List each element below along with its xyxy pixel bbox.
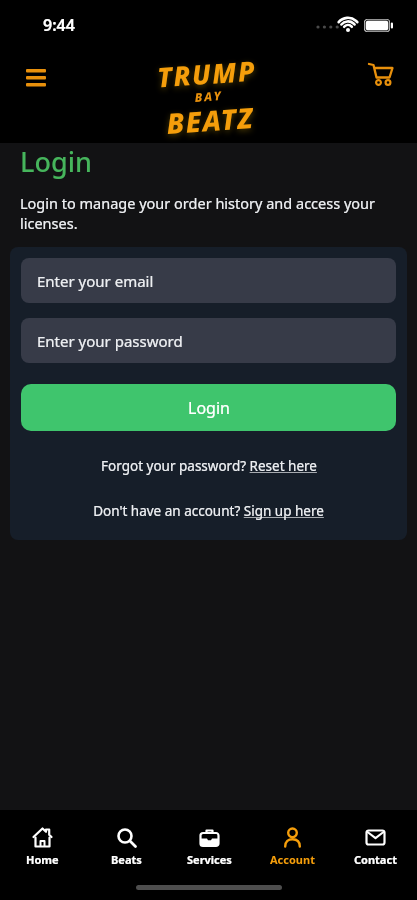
staticText: Home bbox=[26, 852, 59, 867]
button[interactable]: Enter your password bbox=[21, 318, 396, 363]
staticText: Login bbox=[20, 143, 92, 180]
staticText: TRUMP bbox=[156, 52, 257, 95]
staticText: Beats bbox=[111, 852, 142, 867]
button[interactable]: Contact bbox=[334, 826, 417, 867]
staticText: Don't have an account? Sign up here bbox=[93, 502, 324, 520]
button[interactable]: Forgot your password? Reset here bbox=[21, 457, 396, 475]
staticText: Services bbox=[187, 852, 232, 867]
button[interactable]: Services bbox=[168, 826, 251, 867]
button[interactable]: Login bbox=[21, 384, 396, 431]
staticText: Login to manage your order history and a… bbox=[20, 193, 376, 233]
button[interactable]: Beats bbox=[84, 826, 168, 867]
button[interactable]: Home bbox=[0, 826, 84, 867]
staticText: Login bbox=[188, 397, 230, 419]
staticText: Contact bbox=[354, 852, 397, 867]
staticText: BAY bbox=[194, 87, 223, 105]
button[interactable]: Don't have an account? Sign up here bbox=[21, 502, 396, 520]
button[interactable]: Enter your email bbox=[21, 258, 396, 303]
staticText: Enter your email bbox=[37, 271, 154, 291]
button[interactable]: TRUMP bbox=[156, 52, 261, 149]
staticText: 9:44 bbox=[43, 14, 75, 36]
button[interactable] bbox=[18, 60, 54, 96]
staticText: Forgot your password? Reset here bbox=[101, 457, 317, 475]
button[interactable] bbox=[363, 56, 399, 92]
staticText: Account bbox=[270, 852, 315, 867]
button[interactable]: Account bbox=[251, 826, 334, 867]
staticText: BEATZ bbox=[165, 98, 255, 142]
staticText: Enter your password bbox=[37, 331, 183, 351]
